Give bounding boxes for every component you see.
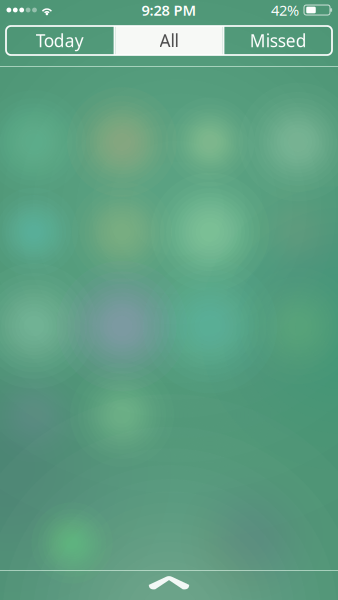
staticText: Today (36, 29, 84, 52)
staticText: 9:28 PM (141, 0, 196, 20)
button[interactable]: Today (6, 26, 114, 55)
button[interactable]: All (115, 26, 223, 55)
staticText: 42% (271, 0, 299, 20)
staticText: Missed (250, 29, 307, 52)
staticText: All (159, 29, 178, 52)
button[interactable]: Close Notification Center (0, 571, 338, 596)
button[interactable]: Missed (224, 26, 332, 55)
